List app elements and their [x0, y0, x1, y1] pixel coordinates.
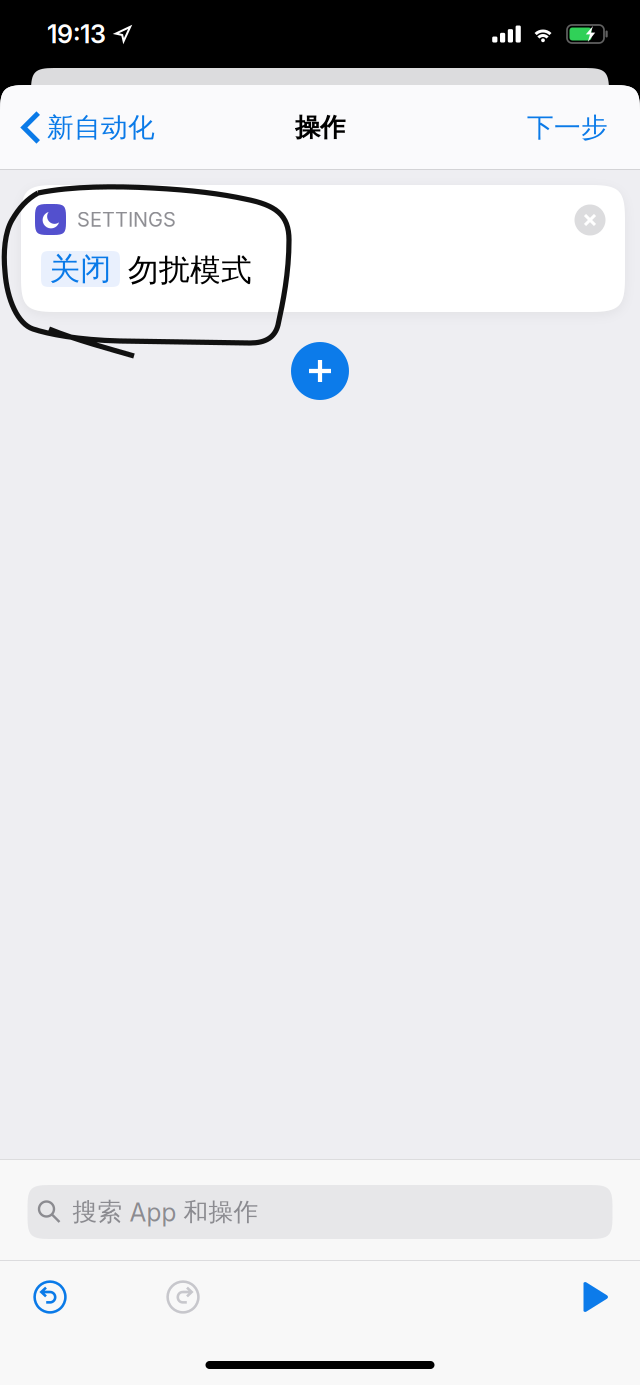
- staticText: 搜索 App 和操作: [72, 1196, 258, 1228]
- staticText: SETTINGS: [77, 207, 176, 232]
- button[interactable]: Run shortcut: [558, 1261, 640, 1333]
- button[interactable]: Search apps and actions: [27, 1160, 612, 1260]
- staticText: 下一步: [527, 111, 608, 144]
- staticText: 勿扰模式: [128, 251, 252, 290]
- staticText: 关闭: [49, 250, 111, 288]
- button[interactable]: 新自动化: [0, 100, 169, 154]
- staticText: 新自动化: [47, 111, 155, 144]
- button[interactable]: Undo: [0, 1261, 149, 1333]
- button[interactable]: Add action: [291, 342, 349, 400]
- button[interactable]: Remove action: [570, 200, 610, 240]
- button[interactable]: Redo: [149, 1261, 217, 1333]
- staticText: 操作: [295, 111, 345, 143]
- staticText: 19:13: [47, 19, 106, 49]
- button[interactable]: 下一步: [513, 101, 640, 154]
